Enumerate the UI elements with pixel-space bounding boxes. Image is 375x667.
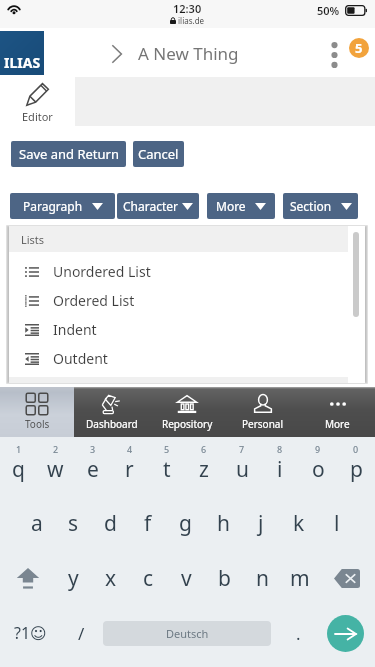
button[interactable]: Paragraph bbox=[10, 193, 115, 219]
staticText: Indent bbox=[53, 320, 97, 339]
button[interactable]: 9 bbox=[299, 437, 337, 493]
staticText: c bbox=[143, 564, 154, 593]
staticText: y bbox=[68, 564, 79, 593]
staticText: 0 bbox=[353, 443, 359, 455]
button[interactable]: 2 bbox=[37, 437, 74, 493]
staticText: . bbox=[296, 622, 301, 645]
staticText: Save and Return bbox=[19, 145, 119, 163]
staticText: Lists bbox=[21, 232, 45, 247]
staticText: 5 bbox=[164, 443, 170, 455]
button[interactable]: Editor bbox=[0, 77, 75, 126]
button[interactable]: 0 bbox=[337, 437, 375, 493]
button[interactable]: Tools bbox=[0, 387, 74, 437]
button[interactable]: 5 bbox=[148, 437, 185, 493]
staticText: ilias.de bbox=[178, 15, 205, 26]
button[interactable]: Enter bbox=[327, 615, 364, 652]
button[interactable]: 3 bbox=[74, 437, 111, 493]
staticText: Deutsch bbox=[166, 626, 209, 641]
staticText: l bbox=[334, 509, 340, 538]
staticText: Unordered List bbox=[53, 262, 151, 281]
button[interactable]: c bbox=[129, 554, 167, 602]
button[interactable]: More bbox=[207, 193, 275, 219]
staticText: Dashboard bbox=[86, 417, 138, 431]
button[interactable]: Section bbox=[283, 193, 358, 219]
button[interactable]: a bbox=[18, 499, 55, 547]
button[interactable]: v bbox=[167, 554, 205, 602]
button[interactable]: 7 bbox=[223, 437, 261, 493]
button[interactable]: Cancel bbox=[133, 141, 184, 167]
staticText: Outdent bbox=[53, 349, 108, 368]
staticText: q bbox=[12, 455, 25, 484]
staticText: 2 bbox=[53, 443, 59, 455]
button[interactable]: 1 bbox=[0, 437, 37, 493]
button[interactable]: Ordered List bbox=[9, 286, 365, 315]
button[interactable]: Character bbox=[117, 193, 199, 219]
staticText: 9 bbox=[315, 443, 321, 455]
button[interactable]: More bbox=[300, 387, 375, 437]
staticText: Personal bbox=[242, 417, 284, 431]
button[interactable]: / bbox=[60, 609, 103, 657]
staticText: 7 bbox=[239, 443, 245, 455]
button[interactable]: Dashboard bbox=[74, 387, 149, 437]
staticText: t bbox=[163, 455, 171, 484]
button[interactable]: h bbox=[204, 499, 242, 547]
button[interactable]: Outdent bbox=[9, 344, 365, 373]
button[interactable]: More options bbox=[322, 36, 346, 74]
button[interactable]: Shift bbox=[0, 554, 55, 602]
staticText: b bbox=[218, 564, 231, 593]
staticText: n bbox=[256, 564, 269, 593]
staticText: d bbox=[104, 509, 117, 538]
staticText: A New Thing bbox=[138, 42, 239, 65]
button[interactable]: Indent bbox=[9, 315, 365, 344]
staticText: 3 bbox=[90, 443, 96, 455]
staticText: 8 bbox=[277, 443, 283, 455]
staticText: u bbox=[236, 455, 249, 484]
button[interactable]: . bbox=[271, 609, 326, 657]
button[interactable]: y bbox=[55, 554, 92, 602]
staticText: 5 bbox=[355, 39, 363, 57]
staticText: z bbox=[199, 455, 209, 484]
staticText: j bbox=[258, 509, 264, 538]
button[interactable]: ILIAS home bbox=[0, 31, 44, 75]
button[interactable]: l bbox=[318, 499, 356, 547]
button[interactable]: 8 bbox=[261, 437, 299, 493]
staticText: v bbox=[181, 564, 192, 593]
button[interactable]: j bbox=[242, 499, 280, 547]
button[interactable]: 4 bbox=[111, 437, 148, 493]
button[interactable]: Repository bbox=[149, 387, 225, 437]
staticText: 50% bbox=[317, 3, 340, 18]
staticText: x bbox=[105, 564, 117, 593]
button[interactable]: Backspace bbox=[319, 554, 375, 602]
staticText: Paragraph bbox=[23, 198, 83, 214]
button[interactable]: Personal bbox=[225, 387, 300, 437]
button[interactable]: Notifications 5 bbox=[349, 38, 369, 58]
staticText: k bbox=[293, 509, 305, 538]
button[interactable]: n bbox=[243, 554, 281, 602]
button[interactable]: g bbox=[166, 499, 204, 547]
staticText: More bbox=[325, 417, 350, 431]
staticText: More bbox=[216, 198, 246, 214]
staticText: w bbox=[47, 455, 64, 484]
button[interactable]: b bbox=[205, 554, 243, 602]
button[interactable]: m bbox=[281, 554, 319, 602]
button[interactable]: x bbox=[92, 554, 129, 602]
staticText: i bbox=[277, 455, 283, 484]
staticText: / bbox=[78, 622, 85, 645]
button[interactable]: k bbox=[280, 499, 318, 547]
button[interactable]: Unordered List bbox=[9, 257, 365, 286]
staticText: g bbox=[179, 509, 192, 538]
button[interactable]: d bbox=[92, 499, 129, 547]
staticText: a bbox=[31, 509, 43, 538]
staticText: Character bbox=[123, 198, 178, 214]
button[interactable]: s bbox=[55, 499, 92, 547]
button[interactable]: Deutsch bbox=[103, 609, 271, 657]
staticText: m bbox=[290, 564, 310, 593]
button[interactable]: f bbox=[129, 499, 166, 547]
staticText: ILIAS bbox=[4, 53, 41, 72]
staticText: 1 bbox=[16, 443, 22, 455]
button[interactable]: Save and Return bbox=[11, 141, 126, 167]
staticText: 12:30 bbox=[173, 1, 202, 16]
staticText: Cancel bbox=[138, 145, 179, 163]
button[interactable]: 6 bbox=[185, 437, 223, 493]
button[interactable]: Symbols and emoji bbox=[0, 609, 60, 657]
